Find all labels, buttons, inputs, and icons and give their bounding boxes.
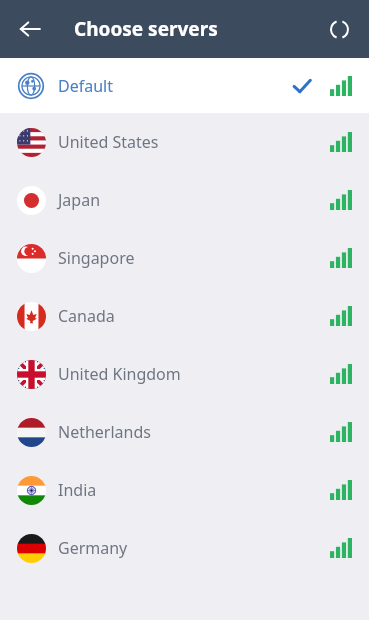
button[interactable]: Singapore [0,229,369,287]
button[interactable]: Default [0,58,369,113]
staticText: Japan [58,189,101,211]
button[interactable]: United States [0,113,369,171]
button[interactable]: Germany [0,519,369,577]
button[interactable]: Back [6,5,54,53]
staticText: Choose servers [74,16,218,42]
button[interactable]: Refresh [315,5,363,53]
staticText: Default [58,75,113,97]
button[interactable]: India [0,461,369,519]
staticText: Canada [58,305,115,327]
button[interactable]: Netherlands [0,403,369,461]
button[interactable]: Japan [0,171,369,229]
staticText: Singapore [58,247,135,269]
button[interactable]: Canada [0,287,369,345]
staticText: India [58,479,97,501]
button[interactable]: United Kingdom [0,345,369,403]
staticText: United Kingdom [58,363,181,385]
staticText: Germany [58,537,128,559]
staticText: Netherlands [58,421,151,443]
staticText: United States [58,131,159,153]
